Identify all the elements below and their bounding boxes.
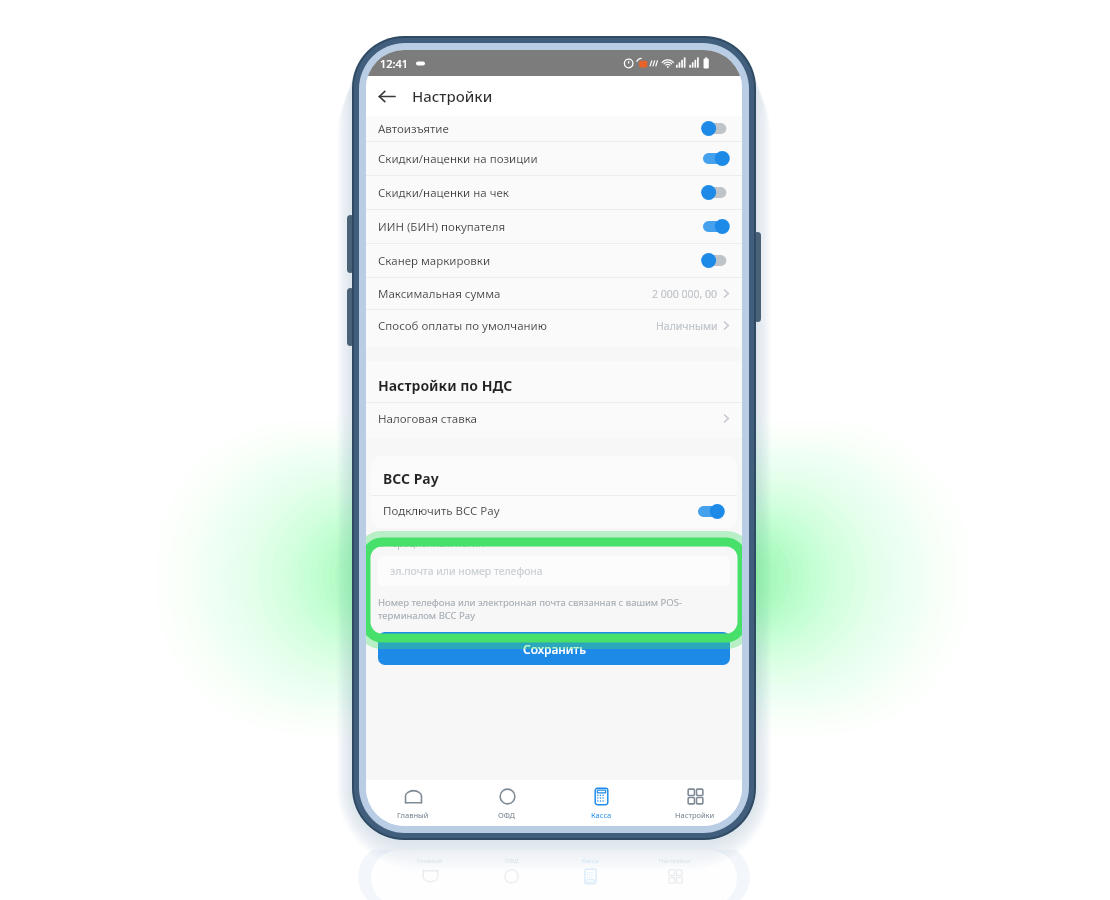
staticText: Настройки по НДС xyxy=(378,376,513,395)
button[interactable]: Касса xyxy=(554,780,648,826)
staticText: 12:41 xyxy=(380,56,409,71)
staticText: Касса xyxy=(582,857,599,865)
button[interactable]: Способ оплаты по умолчанию xyxy=(366,310,742,341)
staticText: 2 000 000, 00 xyxy=(652,287,718,301)
staticText: Настройки xyxy=(659,857,691,865)
staticText: Налоговая ставка xyxy=(378,411,477,427)
staticText: Скидки/наценки на чек xyxy=(378,185,509,201)
staticText: Главный xyxy=(417,857,443,865)
staticText: Автоизъятие xyxy=(378,121,449,137)
staticText: Подключить BCC Pay xyxy=(383,503,500,519)
staticText: ОФД xyxy=(505,857,519,865)
button[interactable]: эл.почта или номер телефона xyxy=(378,556,730,586)
button[interactable]: ОФД xyxy=(460,780,554,826)
staticText: Скидки/наценки на позиции xyxy=(378,151,538,167)
button[interactable]: ИИН (БИН) покупателя xyxy=(366,210,742,243)
staticText: Наличными xyxy=(656,319,718,333)
staticText: ОФД xyxy=(498,810,516,820)
button[interactable]: Скидки/наценки на позиции xyxy=(366,142,742,175)
staticText: эл.почта или номер телефона xyxy=(390,564,543,578)
button[interactable]: Налоговая ставка xyxy=(366,403,742,434)
staticText: Операционный логин xyxy=(378,536,485,550)
staticText: ИИН (БИН) покупателя xyxy=(378,219,506,235)
staticText: Касса xyxy=(591,810,612,820)
staticText: Сканер маркировки xyxy=(378,253,491,269)
staticText: Номер телефона или электронная почта свя… xyxy=(378,596,730,622)
button[interactable]: Настройки xyxy=(648,780,742,826)
button[interactable]: Скидки/наценки на чек xyxy=(366,176,742,209)
staticText: Способ оплаты по умолчанию xyxy=(378,318,547,334)
staticText: Настройки xyxy=(675,810,715,820)
button[interactable]: Сохранить xyxy=(378,632,730,665)
button[interactable]: Назад xyxy=(366,76,406,116)
button[interactable]: Максимальная сумма xyxy=(366,278,742,309)
button[interactable]: Главный xyxy=(366,780,460,826)
staticText: Сохранить xyxy=(523,641,586,657)
staticText: Максимальная сумма xyxy=(378,286,501,302)
staticText: Настройки xyxy=(412,86,493,106)
button[interactable]: Подключить BCC Pay xyxy=(371,496,737,526)
button[interactable]: Сканер маркировки xyxy=(366,244,742,277)
button[interactable]: Автоизъятие xyxy=(366,116,742,141)
staticText: BCC Pay xyxy=(383,469,439,488)
staticText: Главный xyxy=(397,810,429,820)
